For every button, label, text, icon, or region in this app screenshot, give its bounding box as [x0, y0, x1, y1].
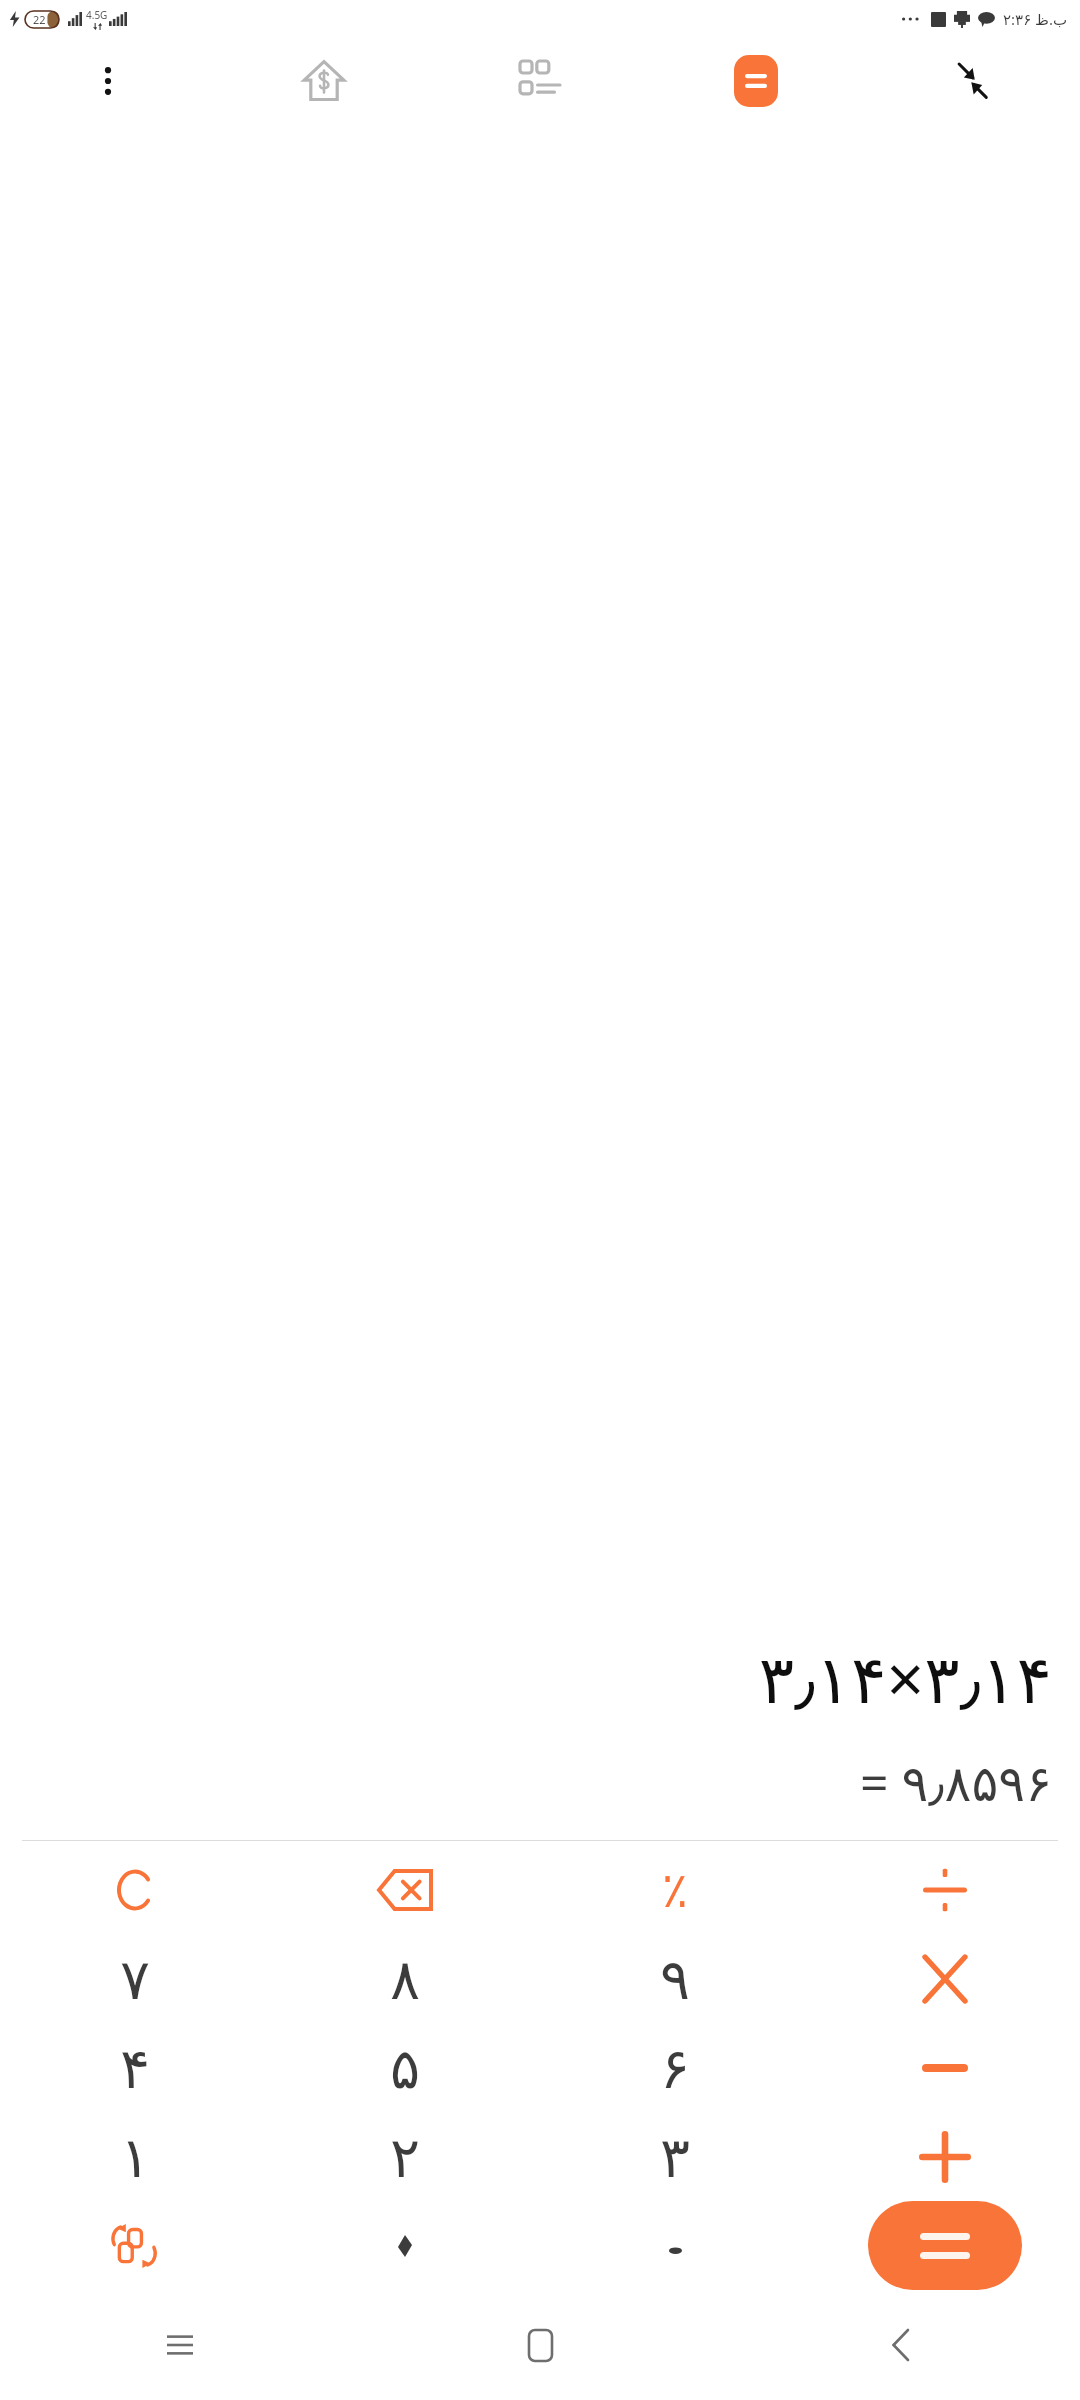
button[interactable]: Multiply — [901, 1935, 989, 2023]
button[interactable]: Plus — [901, 2113, 989, 2201]
staticText: = ۹٫۸۵۹۶ — [859, 1748, 1052, 1816]
button[interactable]: Nine — [631, 1935, 719, 2023]
staticText: ۵ — [390, 2036, 421, 2101]
button[interactable]: Home — [360, 2290, 720, 2400]
staticText: ۴ — [120, 2036, 151, 2101]
button[interactable]: Two — [361, 2113, 449, 2201]
button[interactable]: Recent apps — [0, 2290, 360, 2400]
button[interactable]: One — [91, 2113, 179, 2201]
staticText: ۶ — [660, 2036, 691, 2101]
staticText: ۸ — [390, 1947, 421, 2012]
button[interactable]: Clear — [91, 1846, 179, 1934]
button[interactable]: Swap — [91, 2202, 179, 2290]
staticText: ۷ — [120, 1947, 151, 2012]
button[interactable]: Back — [720, 2290, 1080, 2400]
button[interactable]: Three — [631, 2113, 719, 2201]
button[interactable]: Decimal point — [631, 2202, 719, 2290]
button[interactable]: Calculator — [648, 37, 864, 125]
staticText: ۳ — [660, 2125, 691, 2190]
button[interactable]: Eight — [361, 1935, 449, 2023]
button[interactable]: Seven — [91, 1935, 179, 2023]
button[interactable]: More options — [0, 37, 216, 125]
button[interactable]: Five — [361, 2024, 449, 2112]
staticText: 22 — [33, 12, 46, 27]
staticText: 4.5G — [86, 8, 108, 22]
button[interactable]: Currency converter — [216, 37, 432, 125]
button[interactable]: Minus — [901, 2024, 989, 2112]
button[interactable]: Four — [91, 2024, 179, 2112]
button[interactable]: Equals — [868, 2201, 1022, 2290]
staticText: ٪ — [662, 1862, 688, 1918]
staticText: ب.ظ ۲:۳۶ — [1003, 9, 1068, 29]
staticText: ۳٫۱۴×۳٫۱۴ — [758, 1632, 1052, 1722]
staticText: ۱ — [120, 2125, 151, 2190]
button[interactable]: Backspace — [361, 1846, 449, 1934]
button[interactable]: Unit converter — [432, 37, 648, 125]
button[interactable]: Thousands separator — [361, 2202, 449, 2290]
button[interactable]: Collapse — [864, 37, 1080, 125]
button[interactable]: Divide — [901, 1846, 989, 1934]
button[interactable]: Six — [631, 2024, 719, 2112]
staticText: ۹ — [660, 1947, 691, 2012]
staticText: ۲ — [390, 2125, 421, 2190]
button[interactable]: Percent — [631, 1846, 719, 1934]
